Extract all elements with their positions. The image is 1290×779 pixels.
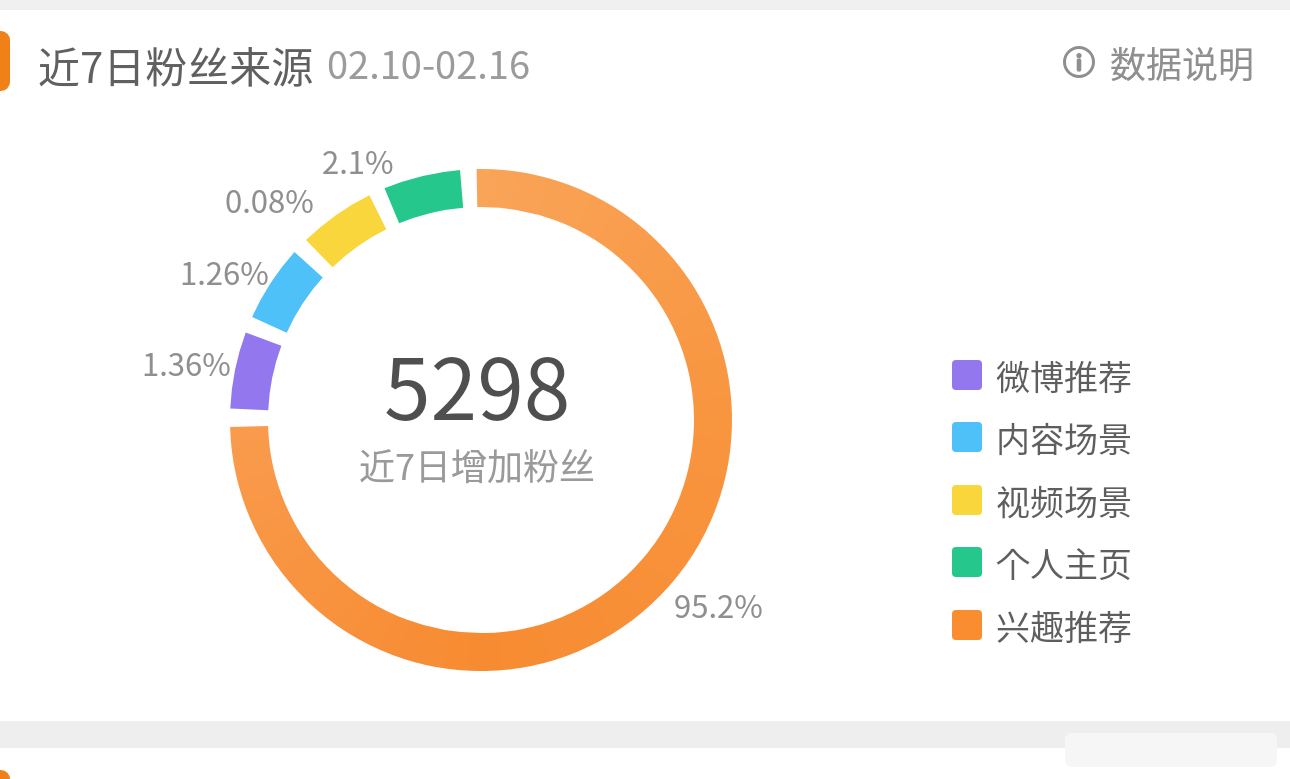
staticText: 近7日增加粉丝 bbox=[359, 438, 595, 490]
staticText: 兴趣推荐 bbox=[996, 601, 1132, 650]
staticText: 近7日粉丝来源 bbox=[38, 34, 314, 95]
staticText: 1.36% bbox=[142, 340, 231, 385]
staticText: 个人主页 bbox=[996, 538, 1132, 587]
staticText: 微博推荐 bbox=[996, 351, 1132, 400]
staticText: 视频场景 bbox=[996, 476, 1132, 525]
staticText: 0.08% bbox=[225, 177, 314, 222]
staticText: 5298 bbox=[384, 323, 571, 423]
staticText: 数据说明 bbox=[1110, 36, 1255, 88]
staticText: 02.10-02.16 bbox=[327, 35, 531, 90]
staticText: 内容场景 bbox=[996, 413, 1132, 462]
staticText: 2.1% bbox=[322, 138, 394, 183]
staticText: 95.2% bbox=[674, 582, 763, 627]
staticText: 1.26% bbox=[180, 249, 269, 294]
